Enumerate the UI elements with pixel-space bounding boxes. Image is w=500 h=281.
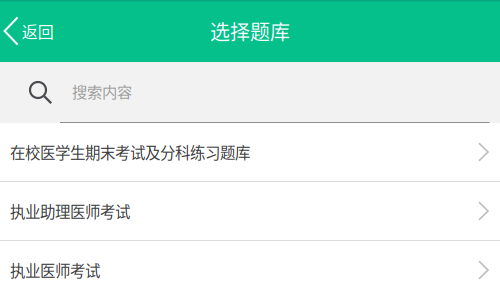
staticText: 搜索内容 xyxy=(72,80,132,102)
button[interactable]: 返回 xyxy=(0,0,64,62)
button[interactable]: 执业医师考试 xyxy=(0,241,500,281)
button[interactable]: 在校医学生期末考试及分科练习题库 xyxy=(0,123,500,181)
staticText: 在校医学生期末考试及分科练习题库 xyxy=(10,141,250,163)
button[interactable]: 执业助理医师考试 xyxy=(0,182,500,240)
button[interactable]: 搜索内容 xyxy=(0,62,500,123)
staticText: 执业医师考试 xyxy=(10,259,100,281)
staticText: 返回 xyxy=(22,19,54,43)
staticText: 选择题库 xyxy=(210,16,290,45)
staticText: 执业助理医师考试 xyxy=(10,200,130,222)
